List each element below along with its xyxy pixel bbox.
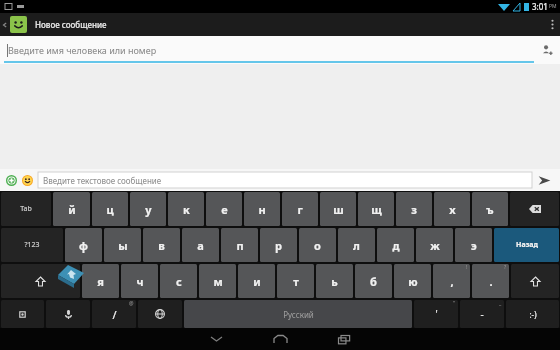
staticText: :-) [529, 309, 537, 320]
button[interactable]: н [244, 192, 280, 226]
button[interactable]: Введите имя человека или номер [0, 36, 534, 64]
button[interactable]: ф [65, 228, 102, 262]
button[interactable]: ж [416, 228, 453, 262]
button[interactable]: . [472, 264, 509, 298]
button[interactable]: с [160, 264, 197, 298]
button[interactable]: х [434, 192, 470, 226]
button[interactable]: г [282, 192, 318, 226]
staticText: 3:01 [532, 1, 548, 12]
staticText: к [183, 202, 190, 217]
button[interactable]: ?123 [1, 228, 63, 262]
staticText: б [370, 274, 377, 289]
button[interactable]: ш [320, 192, 356, 226]
staticText: Введите текстовое сообщение [43, 175, 162, 186]
button[interactable]: т [277, 264, 314, 298]
button[interactable]: Send [532, 169, 556, 191]
button[interactable]: ч [121, 264, 158, 298]
staticText: с [176, 274, 182, 289]
button[interactable]: Back [0, 13, 10, 36]
staticText: в [158, 238, 165, 253]
button[interactable]: Shift [511, 264, 559, 298]
button[interactable]: ю [394, 264, 431, 298]
staticText: р [275, 238, 282, 253]
staticText: ю [408, 274, 418, 289]
button[interactable]: Русский [184, 300, 412, 328]
staticText: у [145, 202, 152, 217]
button[interactable]: ' [414, 300, 458, 328]
staticText: ц [106, 202, 114, 217]
staticText: д [392, 238, 400, 253]
button[interactable]: к [168, 192, 204, 226]
button[interactable]: Attach [4, 173, 18, 187]
staticText: ж [430, 238, 440, 253]
staticText: PM [549, 3, 557, 10]
button[interactable]: о [299, 228, 336, 262]
button[interactable]: з [396, 192, 432, 226]
button[interactable]: щ [358, 192, 394, 226]
button[interactable]: я [82, 264, 119, 298]
button[interactable]: и [238, 264, 275, 298]
button[interactable]: ы [104, 228, 141, 262]
staticText: о [314, 238, 321, 253]
staticText: _ [499, 300, 502, 307]
staticText: п [236, 238, 244, 253]
button[interactable]: б [355, 264, 392, 298]
staticText: ъ [486, 202, 494, 217]
button[interactable]: :-) [506, 300, 559, 328]
button[interactable]: в [143, 228, 180, 262]
button[interactable]: Emoji [20, 173, 34, 187]
staticText: Новое сообщение [35, 19, 107, 30]
button[interactable]: Введите текстовое сообщение [38, 172, 532, 188]
button[interactable]: а [182, 228, 219, 262]
button[interactable]: Назад [494, 228, 559, 262]
staticText: , [450, 274, 454, 289]
button[interactable]: й [53, 192, 90, 226]
staticText: " [453, 300, 456, 307]
button[interactable]: - [460, 300, 504, 328]
button[interactable]: , [433, 264, 470, 298]
staticText: г [297, 202, 303, 217]
staticText: э [471, 238, 477, 253]
staticText: ф [79, 238, 88, 253]
button[interactable]: Shift [1, 264, 80, 298]
staticText: ' [435, 307, 438, 321]
staticText: ш [333, 202, 344, 217]
button[interactable]: Add contact [534, 36, 560, 64]
button[interactable]: Recent apps [312, 328, 376, 350]
button[interactable]: п [221, 228, 258, 262]
button[interactable]: Language [138, 300, 182, 328]
staticText: м [213, 274, 223, 289]
button[interactable]: Settings [1, 300, 44, 328]
button[interactable]: ь [316, 264, 353, 298]
button[interactable]: р [260, 228, 297, 262]
button[interactable]: Tab [1, 192, 51, 226]
button[interactable]: д [377, 228, 414, 262]
button[interactable]: э [455, 228, 492, 262]
button[interactable]: ъ [472, 192, 508, 226]
button[interactable]: More options [544, 13, 560, 36]
staticText: т [293, 274, 299, 289]
staticText: Назад [516, 240, 538, 250]
staticText: х [449, 202, 456, 217]
button[interactable]: / [92, 300, 136, 328]
staticText: Русский [283, 309, 314, 320]
button[interactable]: е [206, 192, 242, 226]
button[interactable]: ц [92, 192, 128, 226]
staticText: н [258, 202, 266, 217]
button[interactable]: Hide keyboard [184, 328, 248, 350]
button[interactable]: Backspace [510, 192, 559, 226]
button[interactable]: у [130, 192, 166, 226]
staticText: ы [118, 238, 128, 253]
staticText: е [221, 202, 228, 217]
button[interactable]: Home [248, 328, 312, 350]
staticText: щ [371, 202, 382, 217]
staticText: а [197, 238, 204, 253]
staticText: ч [136, 274, 144, 289]
staticText: ! [466, 264, 468, 271]
staticText: Введите имя человека или номер [8, 44, 157, 56]
button[interactable]: Voice input [46, 300, 90, 328]
staticText: ? [504, 264, 507, 271]
button[interactable]: м [199, 264, 236, 298]
staticText: @ [129, 300, 134, 307]
button[interactable]: л [338, 228, 375, 262]
